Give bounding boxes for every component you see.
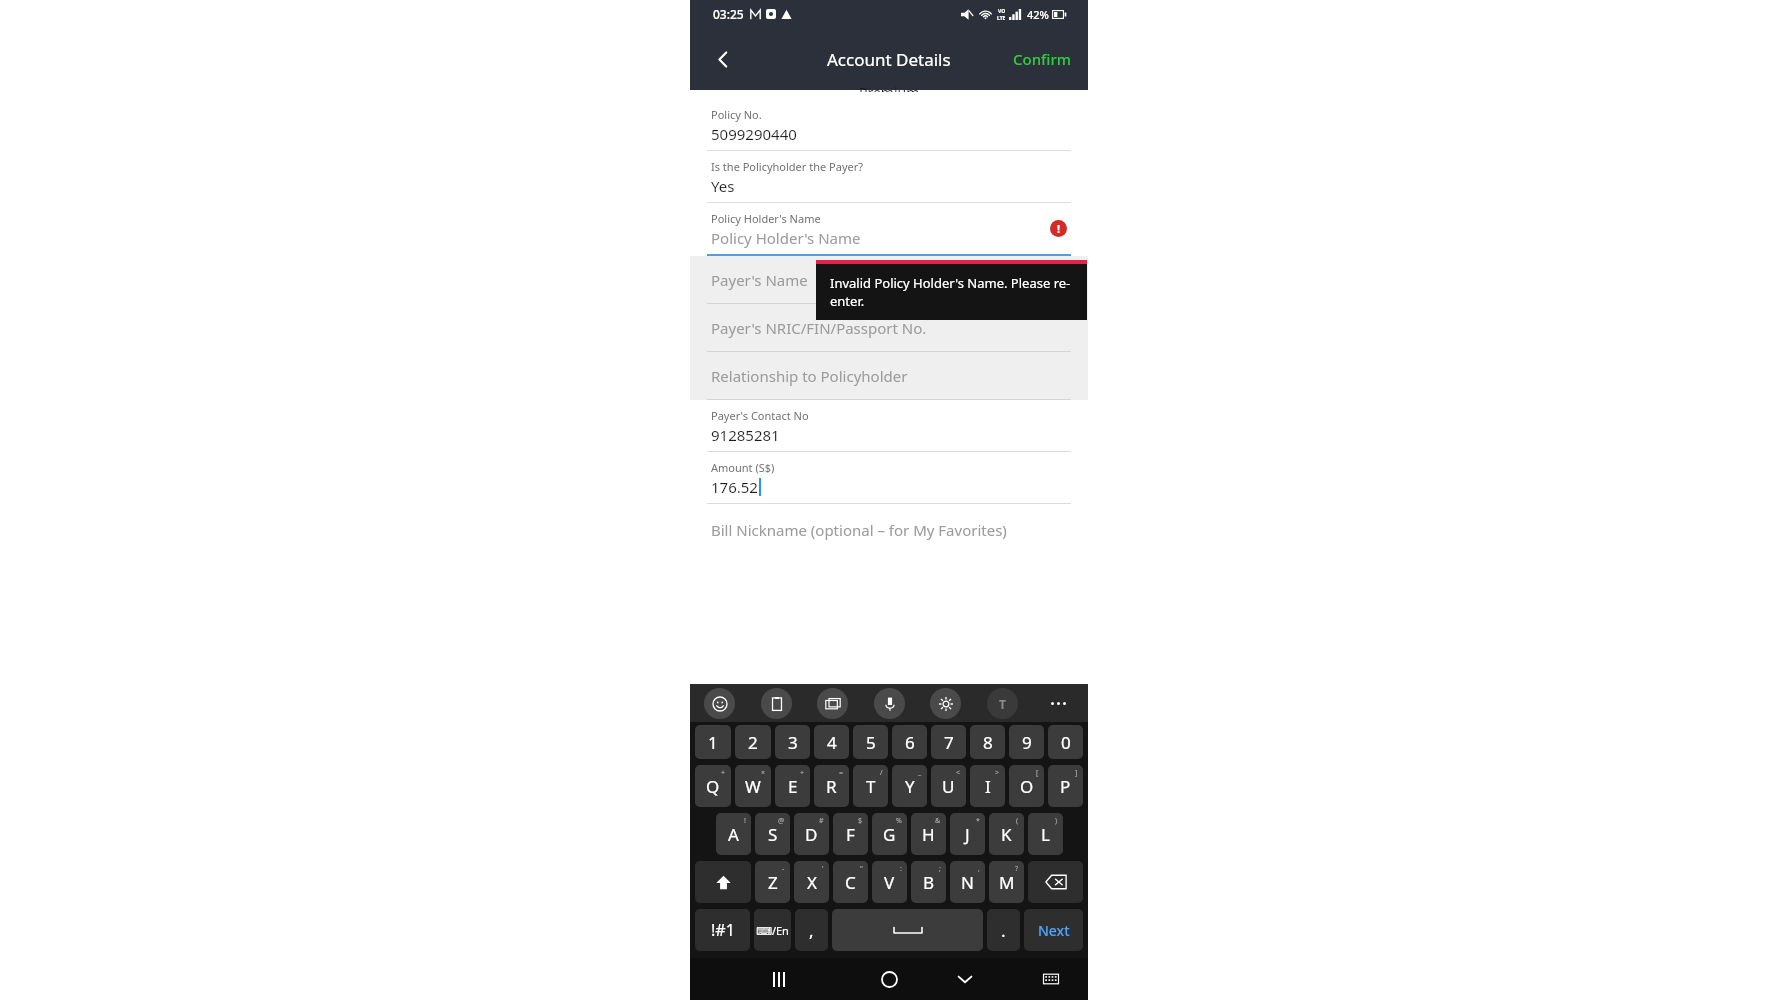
- button[interactable]: Home: [872, 962, 906, 996]
- button[interactable]: 9: [1009, 725, 1044, 759]
- staticText: G: [883, 823, 896, 846]
- staticText: L: [1041, 823, 1050, 846]
- button[interactable]: More options: [1043, 688, 1074, 719]
- staticText: =: [839, 768, 844, 778]
- button[interactable]: Payer's Contact No: [690, 400, 1088, 451]
- button[interactable]: 0: [1048, 725, 1083, 759]
- button[interactable]: 3: [775, 725, 810, 759]
- button[interactable]: Payer's NRIC/FIN/Passport No.: [690, 304, 1088, 352]
- staticText: ⌨/En: [756, 923, 789, 938]
- staticText: 9: [1022, 731, 1032, 754]
- staticText: 4: [827, 731, 837, 754]
- staticText: @: [778, 816, 785, 826]
- staticText: Policy Holder's Name: [711, 211, 821, 226]
- button[interactable]: [: [1009, 765, 1044, 807]
- button[interactable]: =: [814, 765, 849, 807]
- button[interactable]: 1: [695, 725, 731, 759]
- button[interactable]: Space: [832, 909, 983, 951]
- button[interactable]: _: [892, 765, 927, 807]
- staticText: Bill Nickname (optional – for My Favorit…: [711, 520, 1007, 540]
- button[interactable]: Relationship to Policyholder: [690, 352, 1088, 400]
- staticText: Yes: [711, 176, 735, 196]
- button[interactable]: Switch keyboard: [1034, 962, 1068, 996]
- staticText: ': [822, 864, 824, 874]
- button[interactable]: <: [931, 765, 966, 807]
- button[interactable]: !#1: [695, 909, 750, 951]
- button[interactable]: (: [989, 813, 1024, 855]
- staticText: #: [819, 816, 824, 826]
- button[interactable]: Emoji: [704, 688, 735, 719]
- button[interactable]: &: [911, 813, 946, 855]
- button[interactable]: 4: [814, 725, 849, 759]
- button[interactable]: ': [794, 861, 829, 903]
- button[interactable]: ,: [795, 909, 828, 951]
- staticText: 8: [983, 731, 993, 754]
- staticText: J: [965, 823, 970, 846]
- button[interactable]: Keyboard modes: [817, 688, 848, 719]
- staticText: 7: [944, 731, 954, 754]
- staticText: H: [922, 823, 935, 846]
- button[interactable]: 7: [931, 725, 966, 759]
- button[interactable]: ×: [735, 765, 771, 807]
- staticText: 5099290440: [711, 124, 797, 144]
- button[interactable]: *: [950, 813, 985, 855]
- staticText: Payer's Name: [711, 270, 808, 290]
- staticText: D: [805, 823, 818, 846]
- button[interactable]: :: [872, 861, 907, 903]
- button[interactable]: Policy No.: [690, 99, 1088, 150]
- button[interactable]: ?: [989, 861, 1024, 903]
- button[interactable]: Voice input: [874, 688, 905, 719]
- staticText: Policy No.: [711, 107, 762, 122]
- button[interactable]: Is the Policyholder the Payer?: [690, 151, 1088, 202]
- staticText: &: [935, 816, 941, 826]
- button[interactable]: Confirm: [997, 37, 1088, 81]
- button[interactable]: ;: [911, 861, 946, 903]
- button[interactable]: Shift: [695, 861, 751, 903]
- button[interactable]: ]: [1048, 765, 1083, 807]
- button[interactable]: Translate: [987, 688, 1018, 719]
- staticText: 91285281: [711, 425, 780, 445]
- staticText: Y: [905, 775, 915, 798]
- button[interactable]: !: [716, 813, 751, 855]
- button[interactable]: ": [833, 861, 868, 903]
- button[interactable]: Payer's Name: [690, 256, 1088, 304]
- button[interactable]: ÷: [775, 765, 810, 807]
- button[interactable]: Clipboard: [761, 688, 792, 719]
- button[interactable]: 6: [892, 725, 927, 759]
- button[interactable]: /: [853, 765, 888, 807]
- staticText: >: [995, 768, 1000, 778]
- staticText: N: [961, 871, 974, 894]
- button[interactable]: 5: [853, 725, 888, 759]
- staticText: Q: [706, 775, 720, 798]
- staticText: 0: [1061, 731, 1071, 754]
- button[interactable]: Back: [702, 38, 744, 80]
- staticText: -: [782, 864, 785, 874]
- staticText: 6: [905, 731, 915, 754]
- button[interactable]: 8: [970, 725, 1005, 759]
- staticText: T: [866, 775, 876, 798]
- button[interactable]: ,: [950, 861, 985, 903]
- button[interactable]: $: [833, 813, 868, 855]
- button[interactable]: #: [794, 813, 829, 855]
- button[interactable]: Backspace: [1028, 861, 1083, 903]
- button[interactable]: +: [695, 765, 731, 807]
- button[interactable]: Amount (S$): [690, 452, 1088, 503]
- staticText: ,: [978, 864, 980, 874]
- button[interactable]: %: [872, 813, 907, 855]
- button[interactable]: 2: [735, 725, 771, 759]
- button[interactable]: Next: [1024, 909, 1083, 951]
- button[interactable]: Recent apps: [762, 962, 796, 996]
- button[interactable]: @: [755, 813, 790, 855]
- button[interactable]: -: [755, 861, 790, 903]
- button[interactable]: ): [1028, 813, 1063, 855]
- button[interactable]: >: [970, 765, 1005, 807]
- staticText: T: [999, 696, 1006, 712]
- button[interactable]: Hide keyboard: [948, 962, 982, 996]
- button[interactable]: ⌨/En: [754, 909, 791, 951]
- button[interactable]: Keyboard settings: [930, 688, 961, 719]
- staticText: ": [860, 864, 863, 874]
- staticText: W: [745, 775, 761, 798]
- button[interactable]: Policy Holder's Name: [690, 203, 1088, 254]
- staticText: Invalid Policy Holder's Name. Please re-…: [830, 274, 1073, 310]
- button[interactable]: .: [987, 909, 1020, 951]
